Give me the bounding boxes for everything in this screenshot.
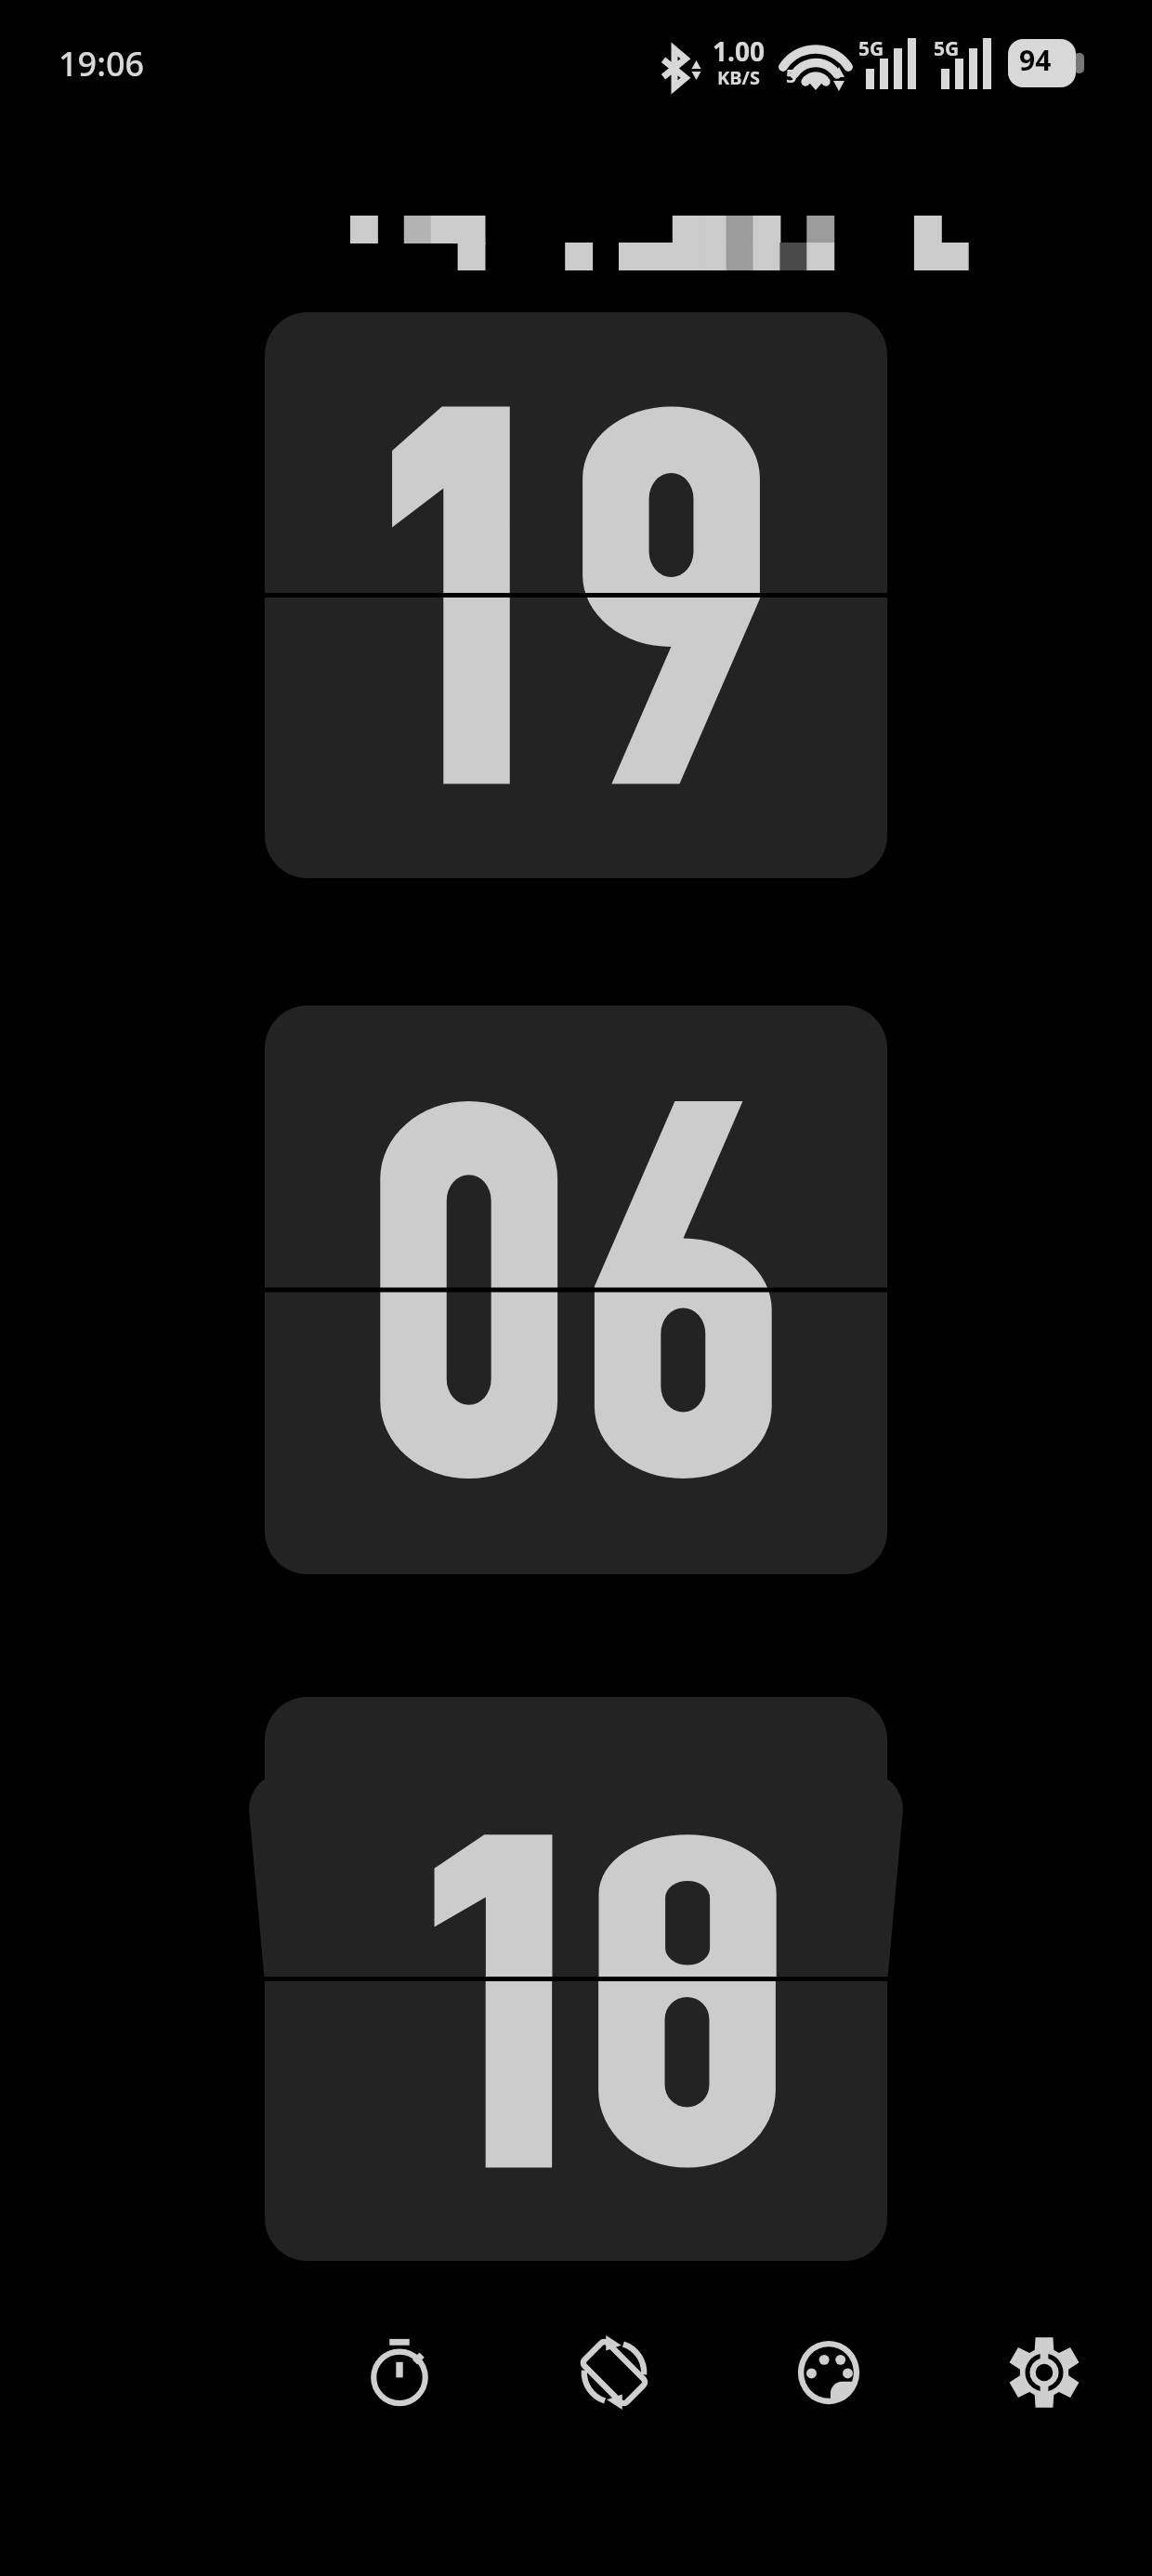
- staticText: 5G: [934, 35, 960, 62]
- staticText: 19:06: [59, 41, 145, 86]
- button[interactable]: Settings: [936, 2307, 1152, 2438]
- staticText: 5: [786, 63, 797, 88]
- button[interactable]: Theme: [721, 2307, 936, 2438]
- button[interactable]: Rotate screen: [506, 2307, 721, 2438]
- button[interactable]: Timer: [292, 2307, 506, 2438]
- staticText: 5G: [858, 35, 884, 62]
- staticText: 94: [1019, 41, 1052, 79]
- staticText: 1.00: [713, 33, 765, 69]
- staticText: KB/S: [717, 65, 760, 90]
